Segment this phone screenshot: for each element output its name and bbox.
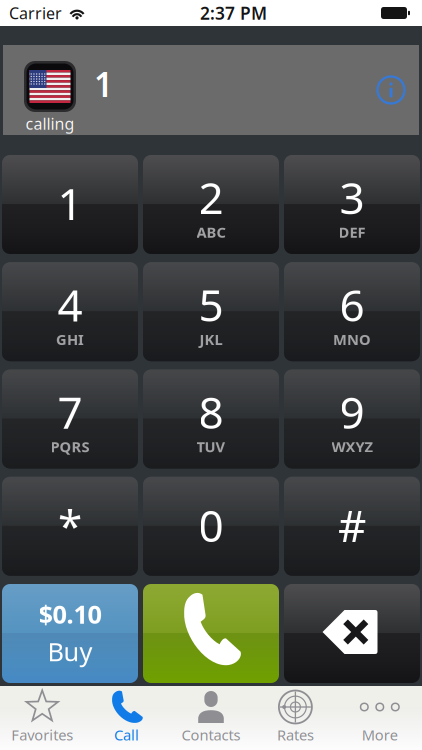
button[interactable]: # xyxy=(284,477,420,576)
staticText: Rates xyxy=(277,725,314,744)
staticText: Contacts xyxy=(181,725,240,744)
staticText: # xyxy=(338,496,366,554)
button[interactable]: 5 xyxy=(143,262,279,361)
staticText: ABC xyxy=(196,222,225,242)
staticText: 5 xyxy=(198,275,223,334)
staticText: 1 xyxy=(57,174,82,232)
button[interactable]: 9 xyxy=(284,369,420,468)
button[interactable]: 1 xyxy=(2,155,138,254)
button[interactable]: 0 xyxy=(143,477,279,576)
staticText: MNO xyxy=(333,330,371,349)
staticText: Buy xyxy=(47,635,92,668)
button[interactable]: Delete xyxy=(284,584,420,683)
button[interactable]: 8 xyxy=(143,369,279,468)
staticText: PQRS xyxy=(50,437,89,456)
button[interactable]: More xyxy=(338,686,422,750)
button[interactable]: 7 xyxy=(2,369,138,468)
staticText: Favorites xyxy=(11,725,73,744)
staticText: 1 xyxy=(94,62,113,106)
staticText: TUV xyxy=(196,437,225,456)
button[interactable]: $0.10 xyxy=(2,584,138,683)
staticText: * xyxy=(58,496,82,554)
button[interactable]: Rate info xyxy=(377,76,405,104)
staticText: 9 xyxy=(339,382,364,441)
staticText: Carrier xyxy=(9,2,62,24)
staticText: 8 xyxy=(198,382,223,441)
staticText: 2:37 PM xyxy=(200,1,267,24)
button[interactable]: * xyxy=(2,477,138,576)
staticText: 3 xyxy=(339,168,364,226)
staticText: calling xyxy=(25,113,74,134)
button[interactable]: Contacts xyxy=(169,686,253,750)
button[interactable]: Rates xyxy=(253,686,338,750)
button[interactable]: calling xyxy=(22,45,78,135)
staticText: 7 xyxy=(57,382,82,441)
button[interactable]: 4 xyxy=(2,262,138,361)
button[interactable]: 6 xyxy=(284,262,420,361)
staticText: Call xyxy=(114,725,139,744)
staticText: DEF xyxy=(338,222,365,242)
staticText: JKL xyxy=(199,330,222,349)
staticText: $0.10 xyxy=(38,597,101,631)
staticText: 6 xyxy=(339,275,364,334)
button[interactable]: Favorites xyxy=(0,686,84,750)
staticText: 2 xyxy=(198,168,223,226)
staticText: GHI xyxy=(56,330,84,349)
button[interactable]: 2 xyxy=(143,155,279,254)
button[interactable]: Call xyxy=(143,584,279,683)
staticText: More xyxy=(362,725,398,744)
staticText: 0 xyxy=(198,496,223,554)
staticText: 4 xyxy=(57,275,82,334)
button[interactable]: 3 xyxy=(284,155,420,254)
button[interactable]: Call xyxy=(84,686,169,750)
staticText: WXYZ xyxy=(331,437,372,456)
